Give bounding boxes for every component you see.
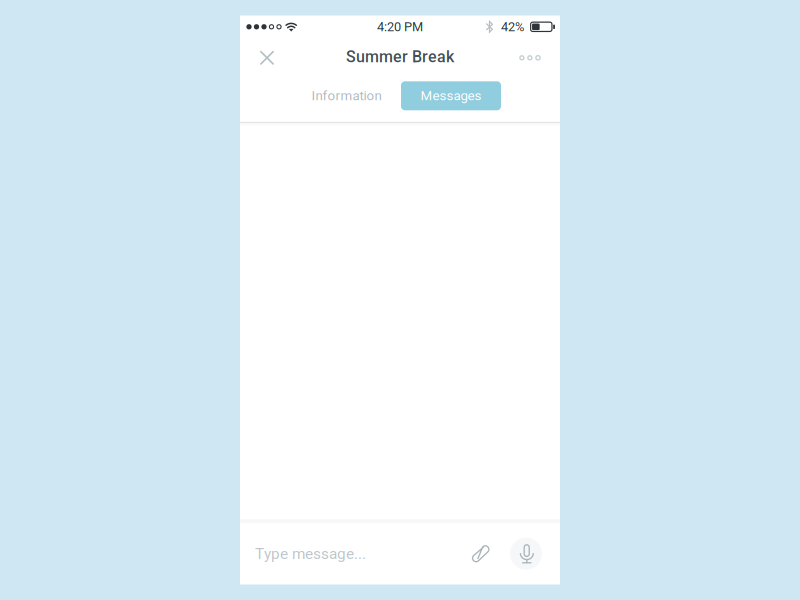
button[interactable]: More options xyxy=(509,38,551,76)
button[interactable]: Messages xyxy=(401,81,501,110)
staticText: Messages xyxy=(420,88,481,104)
button[interactable]: Information xyxy=(302,82,391,110)
staticText: Summer Break xyxy=(346,47,454,66)
button[interactable]: Type message... xyxy=(255,534,455,574)
staticText: 4:20 PM xyxy=(377,19,423,34)
staticText: Type message... xyxy=(255,545,366,563)
button[interactable]: Close xyxy=(246,38,288,76)
staticText: 42% xyxy=(501,19,524,34)
staticText: Information xyxy=(311,88,381,104)
button[interactable]: Record voice message xyxy=(508,536,544,572)
button[interactable]: Attach file xyxy=(463,536,499,572)
